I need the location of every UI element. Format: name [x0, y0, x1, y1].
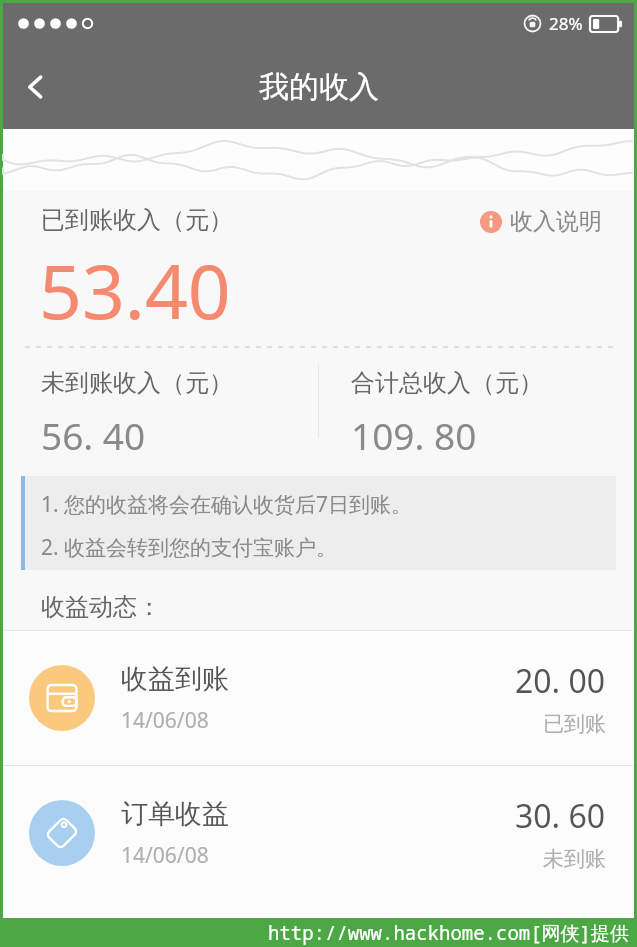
staticText: 已到账收入（元） [41, 205, 233, 235]
button[interactable]: 订单收益 [3, 766, 634, 900]
staticText: 订单收益 [121, 797, 229, 831]
staticText: 30. 60 [515, 794, 606, 838]
staticText: 我的收入 [259, 68, 379, 106]
staticText: 56. 40 [41, 410, 146, 460]
button[interactable]: Back [3, 54, 69, 120]
button[interactable]: 收入说明 [478, 205, 604, 238]
staticText: 14/06/08 [121, 706, 209, 735]
button[interactable]: 收益到账 [3, 631, 634, 765]
staticText: 未到账 [543, 846, 606, 872]
staticText: 收入说明 [510, 207, 602, 236]
staticText: 2. 收益会转到您的支付宝账户。 [41, 533, 338, 562]
staticText: 53.40 [39, 239, 231, 341]
staticText: 20. 00 [515, 659, 606, 703]
staticText: 合计总收入（元） [351, 368, 543, 398]
staticText: 收益动态： [41, 592, 161, 622]
staticText: 14/06/08 [121, 841, 209, 870]
staticText: 109. 80 [351, 410, 477, 460]
staticText: 收益到账 [121, 662, 229, 696]
staticText: 已到账 [543, 711, 606, 737]
staticText: 1. 您的收益将会在确认收货后7日到账。 [41, 490, 413, 519]
staticText: 未到账收入（元） [41, 368, 233, 398]
staticText: http://www.hackhome.com[网侠]提供 [268, 920, 630, 946]
staticText: 28% [549, 12, 583, 35]
